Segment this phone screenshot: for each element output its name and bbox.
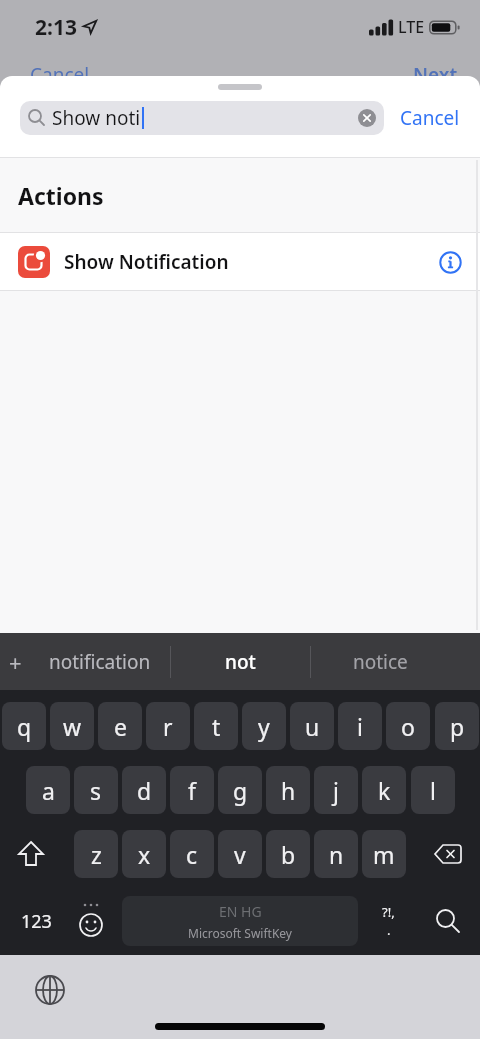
button[interactable]: n: [314, 830, 358, 878]
button[interactable]: [435, 247, 465, 277]
staticText: LTE: [398, 16, 425, 38]
button[interactable]: h: [266, 766, 310, 814]
staticText: .: [387, 921, 391, 939]
button[interactable]: r: [146, 702, 190, 750]
staticText: 2:13: [35, 13, 77, 42]
button[interactable]: a: [26, 766, 70, 814]
staticText: n: [329, 839, 344, 870]
staticText: +: [9, 647, 22, 677]
staticText: d: [137, 775, 152, 806]
staticText: e: [114, 711, 127, 742]
staticText: l: [430, 775, 436, 806]
staticText: Cancel: [30, 62, 90, 88]
button[interactable]: e: [98, 702, 142, 750]
staticText: b: [281, 839, 296, 870]
button[interactable]: k: [362, 766, 406, 814]
staticText: Cancel: [400, 105, 460, 131]
staticText: h: [281, 775, 296, 806]
staticText: f: [188, 775, 196, 806]
button[interactable]: notice: [311, 633, 450, 690]
staticText: x: [138, 839, 151, 870]
staticText: v: [234, 839, 246, 870]
staticText: Microsoft SwiftKey: [188, 925, 292, 941]
button[interactable]: [5, 830, 57, 878]
button[interactable]: f: [170, 766, 214, 814]
staticText: j: [333, 775, 339, 806]
button[interactable]: v: [218, 830, 262, 878]
staticText: a: [42, 775, 55, 806]
button[interactable]: i: [338, 702, 382, 750]
button[interactable]: o: [386, 702, 430, 750]
staticText: Actions: [18, 180, 104, 211]
staticText: i: [357, 711, 363, 742]
staticText: notice: [353, 649, 408, 675]
staticText: Show Notification: [64, 249, 229, 275]
staticText: ?!,: [382, 903, 395, 921]
staticText: c: [186, 839, 198, 870]
staticText: p: [450, 711, 465, 742]
button[interactable]: p: [435, 702, 479, 750]
button[interactable]: w: [50, 702, 94, 750]
button[interactable]: Show noti: [20, 101, 384, 135]
staticText: k: [378, 775, 391, 806]
button[interactable]: ?!,: [366, 896, 410, 946]
staticText: q: [17, 711, 32, 742]
staticText: m: [373, 839, 395, 870]
staticText: o: [401, 711, 415, 742]
staticText: g: [233, 775, 248, 806]
button[interactable]: s: [74, 766, 118, 814]
button[interactable]: c: [170, 830, 214, 878]
button[interactable]: Show Notification: [0, 233, 480, 290]
button[interactable]: l: [411, 766, 455, 814]
button[interactable]: j: [314, 766, 358, 814]
button[interactable]: Cancel: [400, 105, 460, 131]
staticText: s: [90, 775, 102, 806]
button[interactable]: x: [122, 830, 166, 878]
staticText: EN HG: [219, 902, 262, 921]
button[interactable]: u: [290, 702, 334, 750]
button[interactable]: y: [242, 702, 286, 750]
staticText: Next: [413, 62, 458, 88]
button[interactable]: t: [194, 702, 238, 750]
button[interactable]: 123: [10, 896, 62, 946]
button[interactable]: g: [218, 766, 262, 814]
button[interactable]: not: [171, 633, 310, 690]
staticText: t: [212, 711, 221, 742]
staticText: w: [63, 711, 82, 742]
staticText: r: [163, 711, 173, 742]
button[interactable]: notification: [30, 633, 170, 690]
button[interactable]: +: [0, 633, 30, 690]
staticText: notification: [49, 649, 151, 675]
button[interactable]: q: [2, 702, 46, 750]
staticText: Show noti: [52, 105, 141, 131]
button[interactable]: m: [362, 830, 406, 878]
button[interactable]: [68, 896, 114, 946]
button[interactable]: z: [74, 830, 118, 878]
button[interactable]: [424, 830, 472, 878]
staticText: z: [91, 839, 102, 870]
button[interactable]: [30, 970, 70, 1010]
button[interactable]: EN HG: [122, 896, 358, 946]
button[interactable]: b: [266, 830, 310, 878]
button[interactable]: [424, 896, 472, 946]
staticText: u: [305, 711, 320, 742]
staticText: not: [225, 649, 256, 675]
button[interactable]: d: [122, 766, 166, 814]
staticText: y: [258, 711, 270, 742]
staticText: 123: [21, 909, 52, 934]
